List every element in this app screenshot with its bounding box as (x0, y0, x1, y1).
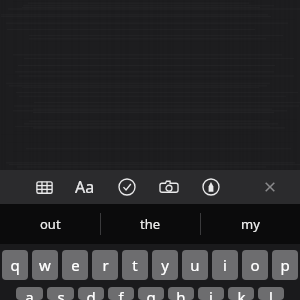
staticText: g (146, 287, 156, 300)
button[interactable]: Markup (190, 170, 232, 204)
staticText: k (237, 287, 246, 300)
button[interactable]: l (258, 287, 284, 300)
staticText: Aa (75, 176, 95, 198)
button[interactable]: s (47, 287, 74, 300)
button[interactable]: r (92, 250, 118, 280)
button[interactable]: Table (24, 170, 64, 204)
staticText: e (71, 255, 80, 275)
staticText: o (250, 255, 260, 275)
button[interactable]: t (122, 250, 148, 280)
button[interactable]: k (228, 287, 254, 300)
staticText: the (140, 215, 161, 233)
button[interactable]: w (32, 250, 58, 280)
button[interactable]: q (2, 250, 28, 280)
button[interactable]: h (168, 287, 194, 300)
staticText: d (86, 287, 96, 300)
staticText: w (39, 255, 51, 275)
staticText: out (40, 215, 61, 233)
button[interactable]: y (152, 250, 178, 280)
staticText: my (241, 215, 260, 233)
button[interactable]: p (272, 250, 298, 280)
button[interactable]: f (108, 287, 134, 300)
button[interactable]: Close (250, 170, 290, 204)
button[interactable]: u (182, 250, 208, 280)
button[interactable]: e (62, 250, 88, 280)
button[interactable]: the (101, 204, 200, 244)
button[interactable]: Aa (64, 170, 106, 204)
button[interactable]: Checklist (106, 170, 148, 204)
button[interactable]: g (138, 287, 164, 300)
staticText: r (102, 255, 109, 275)
staticText: j (209, 287, 213, 300)
button[interactable]: o (242, 250, 268, 280)
staticText: l (269, 287, 273, 300)
staticText: y (161, 255, 169, 275)
staticText: i (223, 255, 227, 275)
button[interactable]: d (78, 287, 104, 300)
staticText: h (176, 287, 186, 300)
button[interactable]: my (201, 204, 300, 244)
staticText: u (190, 255, 200, 275)
button[interactable]: out (0, 204, 100, 244)
staticText: f (118, 287, 124, 300)
staticText: q (10, 255, 20, 275)
staticText: p (280, 255, 290, 275)
staticText: t (132, 255, 138, 275)
button[interactable]: Camera (148, 170, 190, 204)
button[interactable]: i (212, 250, 238, 280)
staticText: a (25, 287, 34, 300)
staticText: s (57, 287, 65, 300)
button[interactable]: j (198, 287, 224, 300)
button[interactable]: a (16, 287, 43, 300)
